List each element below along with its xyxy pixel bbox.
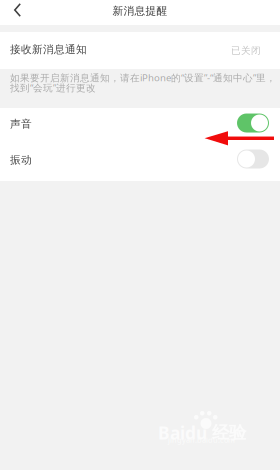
staticText: 找到“会玩”进行更改 xyxy=(10,81,96,94)
staticText: Baidu xyxy=(158,421,207,445)
staticText: 振动 xyxy=(10,153,32,167)
button[interactable]: 声音 xyxy=(0,108,280,144)
staticText: 如果要开启新消息通知，请在iPhone的“设置”-“通知中心”里， xyxy=(10,71,276,84)
staticText: 新消息提醒 xyxy=(112,4,167,18)
staticText: 经验 xyxy=(207,422,246,444)
staticText: jingyan.baidu.com xyxy=(168,435,235,445)
button[interactable]: 接收新消息通知 xyxy=(0,32,280,69)
button[interactable]: 返回 xyxy=(0,0,32,25)
staticText: 声音 xyxy=(10,117,32,131)
staticText: 已关闭 xyxy=(231,44,261,57)
staticText: 接收新消息通知 xyxy=(10,43,87,56)
button[interactable]: 振动 xyxy=(0,144,280,180)
